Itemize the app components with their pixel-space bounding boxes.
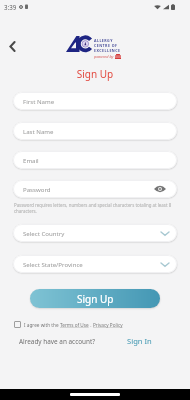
staticText: Already have an account? [19, 337, 96, 346]
button[interactable]: Privacy Policy [93, 322, 123, 328]
button[interactable]: Sign In [124, 334, 155, 348]
staticText: powered by [94, 54, 114, 59]
button[interactable]: Back [3, 37, 21, 55]
staticText: 3:39 [4, 3, 17, 11]
staticText: EXCELLENCE [94, 48, 121, 53]
staticText: Password requires letters, numbers and s… [14, 202, 177, 214]
button[interactable]: Select State/Province [13, 255, 177, 273]
button[interactable]: Terms of Use [60, 322, 89, 328]
staticText: I agree with the [24, 322, 60, 328]
button[interactable]: Agree to terms [14, 321, 21, 328]
staticText: ALLERGY [94, 38, 113, 43]
button[interactable]: First Name [13, 92, 177, 110]
button[interactable]: Select Country [13, 224, 177, 242]
button[interactable]: Email [13, 151, 177, 169]
staticText: Select Country [23, 229, 65, 237]
staticText: . [89, 322, 93, 328]
staticText: Sign Up [0, 67, 190, 81]
staticText: First Name [23, 97, 55, 105]
staticText: Sign Up [77, 292, 114, 306]
staticText: Password [23, 185, 51, 193]
staticText: CENTRE OF [94, 43, 118, 48]
staticText: Email [23, 156, 39, 164]
button[interactable]: Password [13, 180, 177, 198]
staticText: Select State/Province [23, 260, 83, 268]
staticText: Last Name [23, 127, 54, 135]
button[interactable]: Sign Up [30, 289, 160, 308]
button[interactable]: Last Name [13, 122, 177, 140]
